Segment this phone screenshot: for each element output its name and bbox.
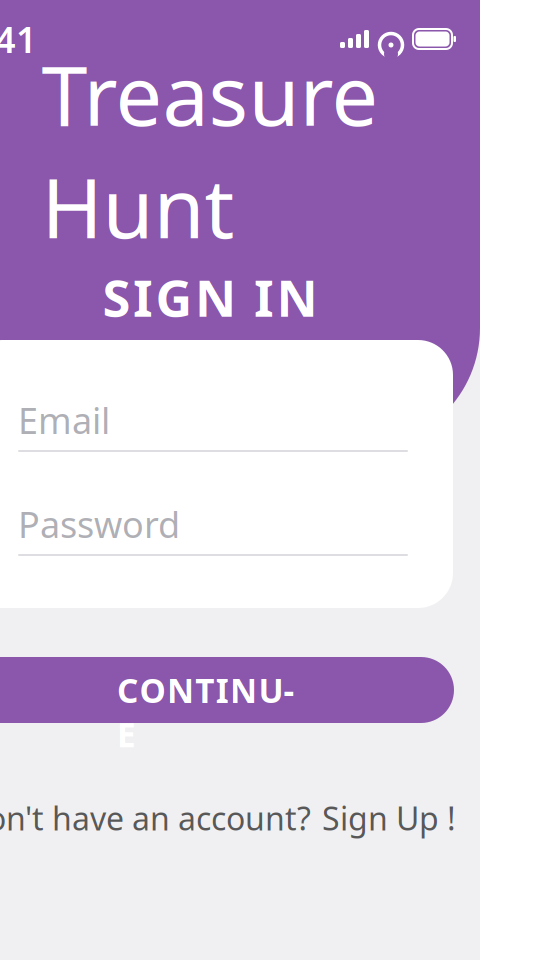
staticText: Don't have an account? [0,797,311,839]
staticText: Sign Up ! [322,797,456,839]
button[interactable]: Don't have an account? [0,796,480,840]
staticText: Email [18,396,110,444]
staticText: SIGN IN [102,263,317,331]
button[interactable]: CONTINUE [0,657,454,723]
staticText: 9:41 [0,15,37,63]
staticText: Treasure Hunt [41,37,378,263]
staticText: Password [18,500,180,548]
staticText: CONTINUE [117,668,304,712]
